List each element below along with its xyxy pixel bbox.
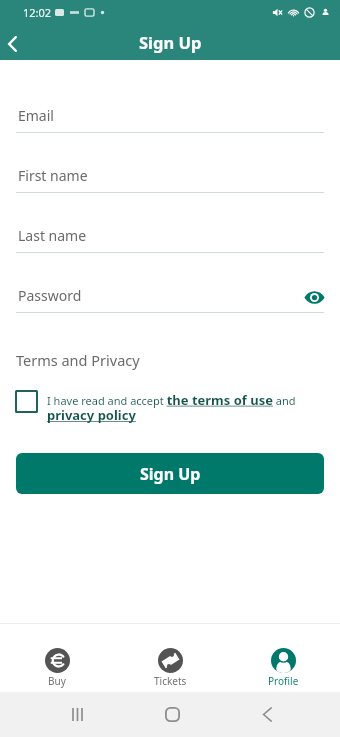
button[interactable]: Profile xyxy=(227,624,340,692)
staticText: Sign Up xyxy=(140,463,201,485)
staticText: Sign Up xyxy=(139,31,202,53)
button[interactable]: I have read and accept the terms of use … xyxy=(15,389,324,422)
button[interactable]: Sign Up xyxy=(16,453,324,494)
staticText: Terms and Privacy xyxy=(16,350,140,370)
staticText: Buy xyxy=(48,674,66,688)
staticText: Profile xyxy=(268,674,299,688)
button[interactable]: Tickets xyxy=(114,624,227,692)
button[interactable]: Last name xyxy=(0,193,340,253)
button[interactable]: Password xyxy=(0,253,340,313)
staticText: First name xyxy=(18,166,88,185)
staticText: 12:02 xyxy=(23,5,52,20)
button[interactable]: Recent apps xyxy=(29,692,125,737)
staticText: Last name xyxy=(18,226,87,245)
staticText: I have read and accept the terms of use … xyxy=(47,391,324,424)
button[interactable]: First name xyxy=(0,133,340,193)
button[interactable]: Email xyxy=(0,73,340,133)
staticText: Password xyxy=(18,286,82,305)
button[interactable]: Back xyxy=(220,692,315,737)
button[interactable]: Back xyxy=(0,32,24,56)
staticText: Tickets xyxy=(154,674,187,688)
button[interactable]: Buy xyxy=(0,624,114,692)
staticText: Email xyxy=(18,106,54,125)
button[interactable]: Show password xyxy=(303,286,325,308)
button[interactable]: Home xyxy=(125,692,220,737)
